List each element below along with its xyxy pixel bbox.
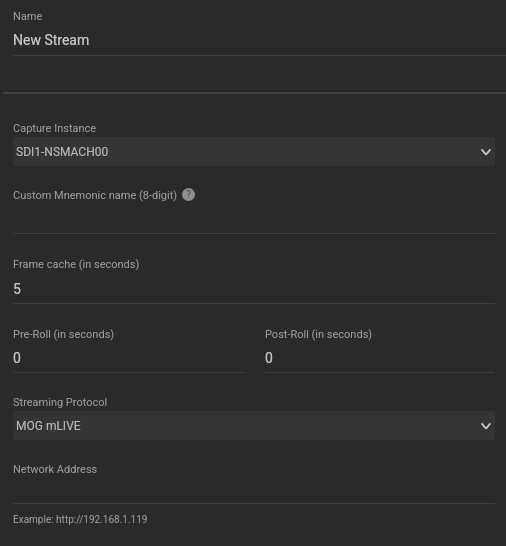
button[interactable]: MOG mLIVE	[13, 411, 495, 440]
button[interactable]: Help	[182, 188, 195, 201]
staticText: 5	[13, 281, 21, 297]
other: Expand	[480, 147, 492, 157]
staticText: New Stream	[13, 32, 90, 48]
staticText: Streaming Protocol	[13, 396, 108, 409]
staticText: Custom Mnemonic name (8-digit)	[13, 189, 178, 202]
staticText: Pre-Roll (in seconds)	[13, 328, 115, 341]
staticText: Example: http://192.168.1.119	[13, 514, 148, 526]
staticText: Network Address	[13, 463, 98, 476]
staticText: Post-Roll (in seconds)	[265, 328, 373, 341]
staticText: SDI1-NSMACH00	[16, 145, 109, 159]
staticText: Frame cache (in seconds)	[13, 258, 140, 271]
button[interactable]: Name	[0, 0, 506, 57]
staticText: Name	[13, 10, 43, 23]
staticText: Capture Instance	[13, 122, 97, 135]
other: Expand	[480, 421, 492, 431]
staticText: 0	[265, 350, 273, 366]
staticText: MOG mLIVE	[16, 419, 81, 433]
button[interactable]: SDI1-NSMACH00	[13, 137, 495, 166]
staticText: 0	[13, 350, 21, 366]
staticText: ?	[186, 189, 191, 201]
